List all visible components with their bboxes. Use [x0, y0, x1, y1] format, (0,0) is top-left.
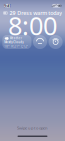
staticText: 29 — [10, 9, 16, 17]
button[interactable]: Time — [4, 4, 11, 8]
staticText: Mostly Cloudy — [4, 40, 23, 44]
staticText: Weather — [10, 36, 22, 40]
staticText: Dress warm today — [17, 9, 62, 17]
button[interactable]: Weather — [2, 35, 31, 49]
button[interactable]: Status — [52, 4, 61, 8]
button[interactable]: Sleep widget — [33, 35, 47, 49]
staticText: 8:00 — [8, 9, 57, 42]
staticText: 18° H:21° L:12° — [4, 45, 28, 48]
staticText: 9:41 — [4, 3, 11, 8]
staticText: Swipe up to open — [17, 125, 48, 130]
button[interactable]: Timer widget — [49, 35, 63, 49]
